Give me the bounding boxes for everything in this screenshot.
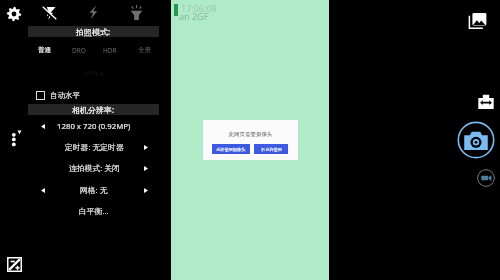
button[interactable]: 不允许使用 xyxy=(254,144,288,154)
staticText: 白平衡... xyxy=(79,206,109,217)
staticText: 连拍模式: 关闭 xyxy=(69,163,120,174)
button[interactable]: Gallery xyxy=(468,11,488,31)
staticText: 拍照模式: xyxy=(76,26,111,37)
staticText: HDR xyxy=(103,46,117,55)
staticText: 允许使用摄像头 xyxy=(216,147,246,152)
button[interactable]: 1280 x 720 (0.92MP) xyxy=(20,120,168,133)
button[interactable]: 全景 xyxy=(129,45,159,55)
button[interactable]: Flash off xyxy=(41,4,58,21)
button[interactable]: Torch xyxy=(128,4,145,21)
button[interactable]: Exposure xyxy=(7,257,22,272)
button[interactable]: Record video xyxy=(477,169,495,187)
button[interactable]: Settings xyxy=(6,6,22,22)
staticText: 1280 x 720 (0.92MP) xyxy=(57,121,131,132)
button[interactable]: 拍照模式: xyxy=(28,26,159,37)
button[interactable]: More options xyxy=(8,129,22,147)
button[interactable]: 网格: 无 xyxy=(20,184,168,197)
staticText: DRO xyxy=(72,46,86,55)
button[interactable]: 相机分辨率: xyxy=(28,104,159,115)
staticText: 此网页需要摄像头 xyxy=(203,131,298,138)
staticText: 相机分辨率: xyxy=(72,104,115,115)
button[interactable]: 普通 xyxy=(29,45,59,55)
button[interactable]: Switch camera xyxy=(478,94,494,109)
staticText: 自动水平 xyxy=(50,91,80,100)
button[interactable]: HDR xyxy=(95,45,125,55)
button[interactable]: DRO xyxy=(64,45,94,55)
button[interactable]: 定时器: 无定时器 xyxy=(20,141,168,154)
staticText: 全景 xyxy=(138,46,151,54)
button[interactable]: Flash auto xyxy=(85,4,101,20)
staticText: 17:06:09 xyxy=(181,2,217,14)
button[interactable]: 自动水平 xyxy=(36,90,80,100)
button[interactable]: 连拍模式: 关闭 xyxy=(20,162,168,175)
button[interactable]: 白平衡... xyxy=(20,205,168,218)
button[interactable]: 允许使用摄像头 xyxy=(212,144,250,154)
staticText: 定时器: 无定时器 xyxy=(65,142,124,153)
staticText: an 2GF xyxy=(179,10,209,22)
button[interactable]: Take photo xyxy=(457,121,495,159)
staticText: 网格: 无 xyxy=(80,185,108,196)
staticText: 普通 xyxy=(38,46,51,54)
staticText: 不允许使用 xyxy=(261,147,282,152)
staticText: 拍照曝光 xyxy=(84,70,104,76)
